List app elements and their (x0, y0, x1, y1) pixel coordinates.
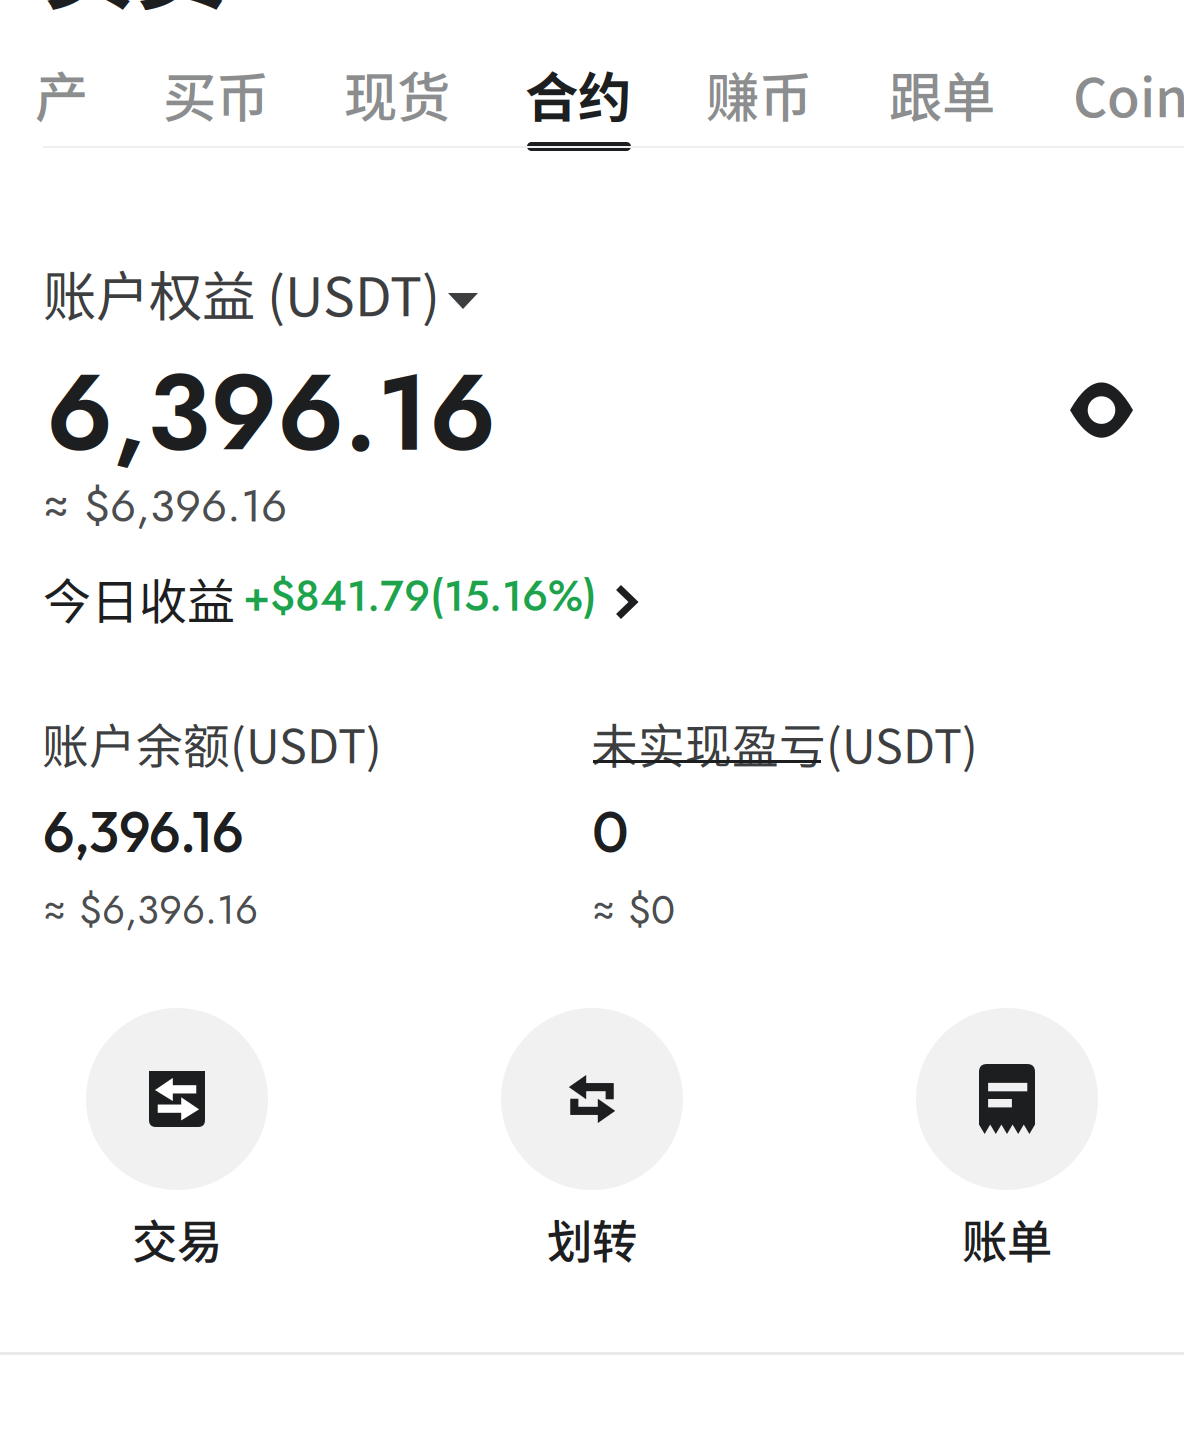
button[interactable]: 买币 (163, 49, 269, 139)
button[interactable]: Coin (1073, 49, 1184, 139)
staticText: 未实现盈亏(USDT) (591, 709, 978, 777)
staticText: 赚币 (706, 55, 812, 133)
staticText: 合约 (525, 55, 631, 133)
staticText: 现货 (344, 55, 450, 133)
staticText: 6,396.16 (46, 337, 496, 489)
button[interactable]: 产 (35, 49, 88, 139)
button[interactable]: 赚币 (706, 49, 812, 139)
staticText: 0 (592, 796, 629, 867)
button[interactable]: 交易 (86, 1008, 268, 1288)
staticText: 今日收益 (43, 563, 235, 633)
staticText: 买币 (163, 55, 269, 133)
button[interactable]: 划转 (501, 1008, 683, 1288)
staticText: Coin (1073, 55, 1184, 133)
staticText: +$841.79(15.16%) (243, 565, 597, 627)
staticText: 账户余额(USDT) (42, 709, 382, 777)
staticText: ≈ $0 (592, 881, 675, 939)
button[interactable]: Hide balance (1070, 383, 1133, 437)
staticText: ≈ $6,396.16 (43, 473, 287, 538)
button[interactable]: 现货 (344, 49, 450, 139)
button[interactable]: 账户权益 (USDT) (43, 264, 470, 322)
button[interactable]: 账单 (916, 1008, 1098, 1288)
button[interactable]: 合约 (525, 49, 631, 139)
button[interactable]: 跟单 (889, 49, 995, 139)
staticText: 买卖 (44, 0, 226, 27)
staticText: 账户权益 (USDT) (43, 254, 440, 332)
button[interactable]: 今日收益 (43, 570, 611, 626)
staticText: 划转 (547, 1206, 637, 1272)
staticText: 6,396.16 (43, 796, 243, 867)
staticText: ≈ $6,396.16 (43, 881, 258, 939)
staticText: 产 (35, 55, 88, 133)
staticText: 账单 (962, 1206, 1052, 1272)
staticText: 交易 (132, 1206, 222, 1272)
staticText: 跟单 (889, 55, 995, 133)
